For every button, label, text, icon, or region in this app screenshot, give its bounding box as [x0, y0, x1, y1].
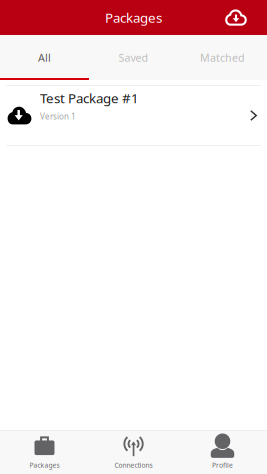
button[interactable]: Saved	[89, 35, 178, 80]
button[interactable]: Download	[220, 1, 252, 33]
staticText: Test Package #1	[40, 89, 139, 107]
staticText: Saved	[118, 50, 148, 65]
staticText: Packages	[29, 461, 59, 469]
button[interactable]: Matched	[178, 35, 267, 80]
staticText: Version 1	[40, 111, 76, 122]
button[interactable]: All	[0, 35, 89, 80]
staticText: Connections	[114, 461, 152, 469]
staticText: All	[38, 50, 51, 65]
button[interactable]: Test Package #1	[0, 86, 267, 145]
staticText: Matched	[200, 50, 245, 65]
button[interactable]: Profile	[178, 430, 267, 474]
staticText: Profile	[212, 461, 233, 469]
button[interactable]: Connections	[89, 430, 178, 474]
staticText: Packages	[105, 9, 162, 26]
button[interactable]: Packages	[0, 430, 89, 474]
